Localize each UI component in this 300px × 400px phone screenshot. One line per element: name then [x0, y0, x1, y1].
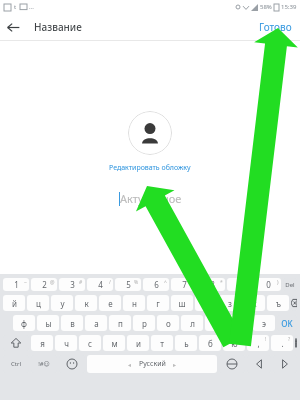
button[interactable]: щ	[195, 295, 217, 311]
button[interactable]: у	[51, 295, 73, 311]
button[interactable]: 4	[87, 278, 113, 291]
button[interactable]: г	[147, 295, 169, 311]
staticText: Ctrl	[11, 360, 21, 368]
staticText: Название	[34, 20, 82, 34]
button[interactable]: я	[31, 335, 53, 351]
staticText: 5	[126, 279, 131, 290]
button[interactable]: к	[75, 295, 97, 311]
staticText: н	[132, 298, 137, 309]
button[interactable]: Редактировать обложку	[107, 161, 193, 175]
staticText: *	[220, 279, 223, 286]
button[interactable]: Right	[273, 355, 297, 373]
staticText: ц	[36, 298, 41, 309]
staticText: у	[60, 298, 65, 309]
staticText: 6	[154, 279, 159, 290]
staticText: 8	[210, 279, 215, 290]
button[interactable]: .	[271, 335, 293, 351]
staticText: !#☺	[38, 360, 50, 368]
button[interactable]: т	[151, 335, 173, 351]
button[interactable]: б	[199, 335, 221, 351]
button[interactable]: м	[103, 335, 125, 351]
staticText: Актуальное	[120, 191, 182, 206]
button[interactable]: в	[61, 315, 83, 331]
staticText: @	[50, 279, 55, 286]
staticText: ъ	[276, 298, 281, 309]
button[interactable]: э	[253, 315, 275, 331]
button[interactable]: Готово	[257, 16, 294, 38]
button[interactable]: а	[85, 315, 107, 331]
button[interactable]: з	[219, 295, 241, 311]
button[interactable]: д	[205, 315, 227, 331]
staticText: 7	[182, 279, 187, 290]
button[interactable]: ь	[175, 335, 197, 351]
button[interactable]: ъ	[267, 295, 289, 311]
button[interactable]: с	[79, 335, 101, 351]
button[interactable]: ж	[229, 315, 251, 331]
button[interactable]: Back	[0, 14, 26, 40]
staticText: )	[277, 279, 279, 286]
button[interactable]: !#☺	[31, 355, 57, 373]
button[interactable]: Emoji	[59, 355, 85, 373]
button[interactable]: 2	[31, 278, 57, 291]
button[interactable]: Left	[247, 355, 271, 373]
button[interactable]: Shift	[3, 335, 29, 351]
button[interactable]: 0	[255, 278, 281, 291]
staticText: ш	[178, 298, 186, 309]
button[interactable]: 3	[59, 278, 85, 291]
button[interactable]: 6	[143, 278, 169, 291]
button[interactable]: ч	[55, 335, 77, 351]
button[interactable]: ы	[37, 315, 59, 331]
staticText: е	[108, 298, 113, 309]
button[interactable]: Change language	[219, 355, 245, 373]
staticText: ◂	[128, 361, 132, 368]
button[interactable]: Shift	[295, 335, 297, 351]
button[interactable]: Del	[283, 278, 297, 291]
button[interactable]: й	[3, 295, 25, 311]
button[interactable]: ю	[223, 335, 245, 351]
button[interactable]: н	[123, 295, 145, 311]
button[interactable]: 9	[227, 278, 253, 291]
button[interactable]: ф	[13, 315, 35, 331]
button[interactable]: и	[127, 335, 149, 351]
button[interactable]: л	[181, 315, 203, 331]
staticText: 4	[98, 279, 103, 290]
button[interactable]: ц	[27, 295, 49, 311]
button[interactable]: OK	[277, 315, 297, 331]
button[interactable]: Backspace	[291, 295, 297, 311]
staticText: ы	[45, 318, 52, 329]
button[interactable]: о	[157, 315, 179, 331]
staticText: л	[190, 318, 195, 329]
staticText: ...	[29, 3, 34, 11]
button[interactable]: 8	[199, 278, 225, 291]
staticText: Del	[285, 281, 295, 289]
staticText: ю	[231, 338, 238, 349]
staticText: 2	[42, 279, 47, 290]
button[interactable]: р	[133, 315, 155, 331]
button[interactable]: ◂	[87, 355, 217, 373]
staticText: ?	[288, 336, 291, 343]
button[interactable]: ,	[247, 335, 269, 351]
staticText: я	[40, 338, 45, 349]
button[interactable]: 1	[3, 278, 29, 291]
button[interactable]: Edit cover photo	[128, 111, 172, 155]
button[interactable]: п	[109, 315, 131, 331]
staticText: р	[142, 318, 147, 329]
button[interactable]: ш	[171, 295, 193, 311]
staticText: й	[12, 298, 17, 309]
button[interactable]: 7	[171, 278, 197, 291]
staticText: ~	[24, 279, 27, 286]
staticText: Готово	[259, 20, 292, 34]
staticText: ^	[164, 279, 167, 286]
staticText: с	[88, 338, 92, 349]
staticText: Редактировать обложку	[109, 163, 191, 173]
button[interactable]: 5	[115, 278, 141, 291]
staticText: ,	[257, 338, 260, 349]
button[interactable]: Ctrl	[3, 355, 29, 373]
button[interactable]: е	[99, 295, 121, 311]
button[interactable]: х	[243, 295, 265, 311]
button[interactable]: Актуальное	[119, 191, 182, 206]
